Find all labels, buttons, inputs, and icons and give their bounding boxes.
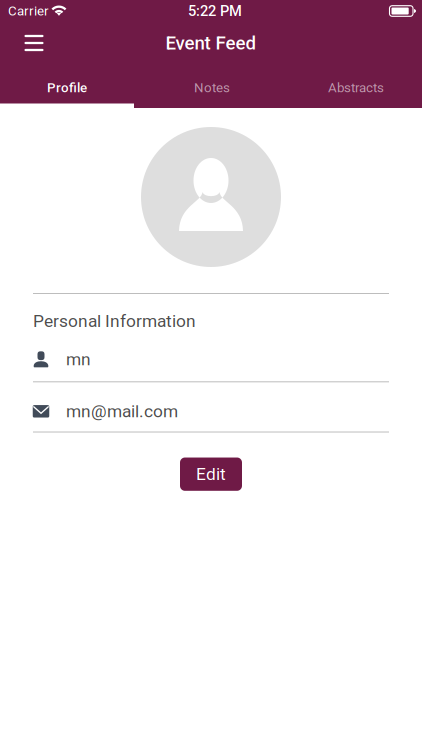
staticText: Edit: [196, 464, 226, 484]
staticText: Abstracts: [328, 80, 384, 95]
button[interactable]: Notes: [134, 64, 290, 108]
staticText: mn: [66, 349, 91, 369]
button[interactable]: Menu: [12, 22, 56, 64]
staticText: Carrier: [8, 3, 49, 19]
button[interactable]: Profile: [0, 64, 134, 108]
staticText: mn@mail.com: [66, 401, 178, 421]
button[interactable]: Edit: [180, 457, 242, 491]
staticText: Event Feed: [165, 32, 256, 54]
staticText: 5:22 PM: [188, 2, 242, 20]
button[interactable]: Abstracts: [290, 64, 422, 108]
staticText: Notes: [194, 80, 230, 95]
staticText: Personal Information: [33, 311, 196, 331]
staticText: Profile: [47, 80, 87, 95]
